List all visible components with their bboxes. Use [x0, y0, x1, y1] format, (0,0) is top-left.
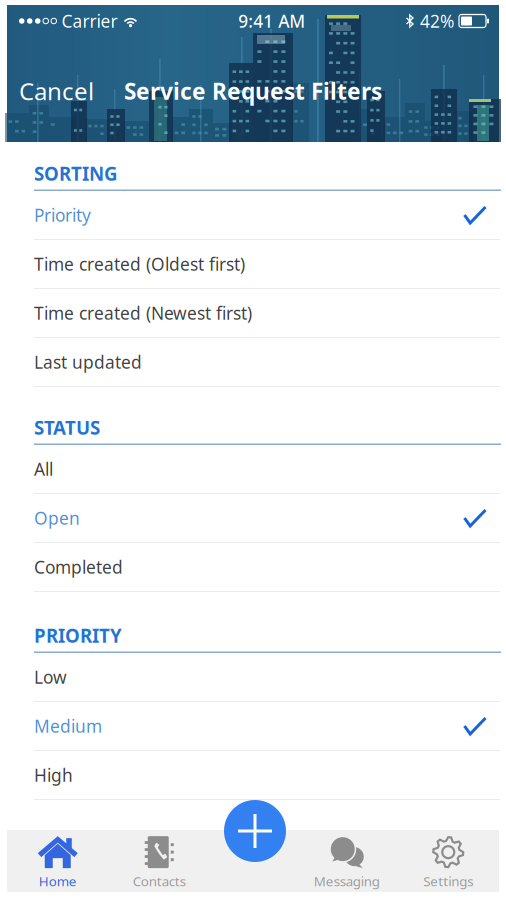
button[interactable]: Contacts [108, 828, 210, 894]
button[interactable]: Priority [0, 191, 506, 240]
button[interactable]: All [0, 445, 506, 494]
button[interactable]: Low [0, 653, 506, 702]
staticText: Carrier [56, 9, 122, 32]
staticText: Time created (Oldest first) [34, 252, 245, 275]
button[interactable]: Settings [397, 828, 499, 894]
staticText: Open [34, 506, 80, 529]
button[interactable]: Add [224, 800, 286, 862]
staticText: Priority [34, 203, 91, 226]
button[interactable]: Open [0, 494, 506, 543]
button[interactable]: Time created (Oldest first) [0, 240, 506, 289]
staticText: Medium [34, 714, 102, 737]
button[interactable]: Messaging [296, 828, 397, 894]
staticText: Messaging [314, 872, 380, 890]
staticText: High [34, 763, 73, 786]
button[interactable]: High [0, 751, 506, 800]
staticText: Cancel [19, 75, 94, 107]
staticText: Settings [423, 872, 473, 890]
staticText: All [34, 457, 53, 480]
staticText: Home [39, 872, 77, 890]
staticText: Last updated [34, 350, 142, 373]
staticText: Low [34, 665, 67, 688]
staticText: SORTING [34, 161, 118, 186]
button[interactable]: Cancel [7, 67, 108, 115]
staticText: Service Request Filters [124, 76, 382, 106]
button[interactable]: Time created (Newest first) [0, 289, 506, 338]
staticText: STATUS [34, 415, 100, 440]
button[interactable]: Last updated [0, 338, 506, 387]
staticText: 9:41 AM [238, 9, 305, 32]
staticText: PRIORITY [34, 623, 122, 648]
staticText: Completed [34, 555, 123, 578]
button[interactable]: Medium [0, 702, 506, 751]
staticText: Contacts [133, 872, 186, 890]
staticText: 42% [415, 9, 459, 32]
staticText: Time created (Newest first) [34, 301, 252, 324]
button[interactable]: Completed [0, 543, 506, 592]
button[interactable]: Home [7, 828, 108, 894]
